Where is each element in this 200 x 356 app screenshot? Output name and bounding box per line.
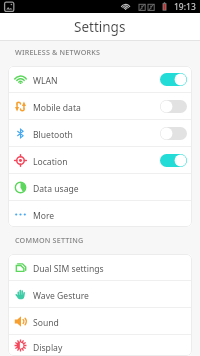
button[interactable]: Mobile data <box>8 93 192 119</box>
staticText: Mobile data <box>33 102 81 114</box>
staticText: WLAN <box>33 75 58 87</box>
staticText: Location <box>33 156 68 168</box>
staticText: More <box>33 210 55 222</box>
staticText: Wave Gesture <box>33 290 89 302</box>
button[interactable]: Display <box>8 335 192 356</box>
staticText: Display <box>33 342 63 354</box>
staticText: Dual SIM settings <box>33 263 104 275</box>
button[interactable]: WLAN <box>8 66 192 92</box>
staticText: 19:13 <box>174 1 196 13</box>
button[interactable]: Wave Gesture <box>8 281 192 307</box>
button[interactable]: More <box>8 201 192 227</box>
button[interactable]: Data usage <box>8 174 192 200</box>
button[interactable]: Location <box>8 147 192 173</box>
staticText: Settings <box>74 18 126 36</box>
button[interactable]: Toggle on <box>160 154 187 167</box>
button[interactable]: Bluetooth <box>8 120 192 146</box>
staticText: Bluetooth <box>33 129 73 141</box>
staticText: WIRELESS & NETWORKS <box>15 47 101 57</box>
button[interactable]: Toggle off <box>160 127 187 140</box>
staticText: COMMON SETTING <box>15 235 84 245</box>
button[interactable]: Toggle off <box>160 100 187 113</box>
staticText: Data usage <box>33 183 79 195</box>
button[interactable]: Dual SIM settings <box>8 254 192 280</box>
button[interactable]: Toggle on <box>160 73 187 86</box>
staticText: Sound <box>33 317 59 329</box>
button[interactable]: Sound <box>8 308 192 334</box>
